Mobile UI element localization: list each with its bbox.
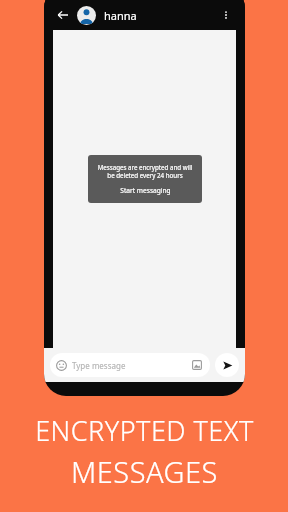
staticText: MESSAGES: [71, 452, 218, 491]
staticText: ENCRYPTED TEXT: [35, 412, 254, 449]
staticText: Messages are encrypted and will be delet…: [95, 163, 195, 179]
staticText: hanna: [104, 8, 137, 23]
staticText: Type message: [72, 360, 126, 371]
button[interactable]: Messages are encrypted and will be delet…: [88, 155, 202, 203]
button[interactable]: Attach image: [190, 358, 204, 372]
staticText: Start messaging: [120, 186, 171, 195]
button[interactable]: Send: [215, 353, 239, 377]
button[interactable]: Back: [53, 5, 73, 25]
button[interactable]: Type message: [50, 353, 210, 377]
button[interactable]: Contact avatar: [77, 6, 96, 25]
button[interactable]: More options: [215, 4, 237, 26]
